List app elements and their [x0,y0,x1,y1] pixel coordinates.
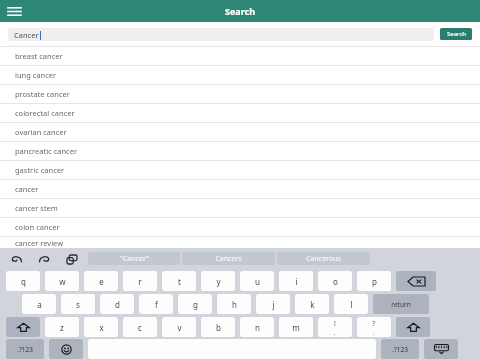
button[interactable]: g [178,294,212,314]
button[interactable]: t [162,271,196,291]
staticText: l [350,299,353,310]
staticText: ovarian cancer [15,127,67,137]
button[interactable]: ! [318,317,352,337]
button[interactable]: return [373,294,429,314]
staticText: .?123 [17,345,33,354]
staticText: ! [334,319,336,329]
staticText: k [310,299,315,310]
button[interactable]: prostate cancer [0,85,480,103]
button[interactable]: Cancer [8,28,434,41]
staticText: e [99,276,104,287]
staticText: ? [372,319,376,329]
staticText: pancreatic cancer [15,146,78,156]
button[interactable]: r [123,271,157,291]
staticText: lung cancer [15,70,57,80]
button[interactable]: Redo [36,251,52,267]
staticText: Cancers [215,254,242,264]
staticText: i [295,276,298,287]
button[interactable]: pancreatic cancer [0,142,480,160]
button[interactable]: f [139,294,173,314]
button[interactable]: gastric cancer [0,161,480,179]
button[interactable]: colorectal cancer [0,104,480,122]
button[interactable]: x [84,317,118,337]
button[interactable]: Shift [396,317,430,337]
staticText: u [255,276,260,287]
staticText: x [99,322,104,333]
button[interactable]: u [240,271,274,291]
button[interactable]: Cancerous [277,252,370,265]
button[interactable]: Paste [64,251,80,267]
button[interactable]: j [256,294,290,314]
button[interactable]: i [279,271,313,291]
staticText: colon cancer [15,222,60,232]
button[interactable]: Shift [6,317,40,337]
button[interactable]: ? [357,317,391,337]
button[interactable]: l [334,294,368,314]
button[interactable]: Hide keyboard [424,339,458,359]
button[interactable]: Backspace [396,271,436,291]
button[interactable]: b [201,317,235,337]
staticText: p [372,276,377,287]
button[interactable]: Search [440,28,472,40]
button[interactable]: Undo [8,251,24,267]
staticText: return [391,300,411,309]
staticText: Search [447,30,466,38]
button[interactable]: o [318,271,352,291]
button[interactable]: ovarian cancer [0,123,480,141]
staticText: b [216,322,221,333]
button[interactable]: y [201,271,235,291]
staticText: z [60,322,64,333]
button[interactable]: a [22,294,56,314]
staticText: o [333,276,338,287]
staticText: h [232,299,237,310]
staticText: r [138,276,142,287]
button[interactable]: q [6,271,40,291]
staticText: a [37,299,42,310]
staticText: d [115,299,120,310]
staticText: breast cancer [15,51,63,61]
button[interactable]: c [123,317,157,337]
button[interactable]: breast cancer [0,47,480,65]
button[interactable]: cancer [0,180,480,198]
button[interactable]: colon cancer [0,218,480,236]
button[interactable]: h [217,294,251,314]
staticText: Cancer [14,30,39,40]
button[interactable]: lung cancer [0,66,480,84]
button[interactable]: cancer review [0,237,480,248]
staticText: m [292,322,300,333]
button[interactable]: Emoji [49,339,83,359]
staticText: t [178,276,181,287]
button[interactable]: Open navigation menu [5,2,23,20]
button[interactable]: m [279,317,313,337]
staticText: Cancerous [306,254,341,264]
button[interactable]: .?123 [6,339,44,359]
staticText: y [216,276,221,287]
button[interactable]: e [84,271,118,291]
button[interactable]: p [357,271,391,291]
button[interactable]: d [100,294,134,314]
button[interactable]: Cancers [182,252,275,265]
staticText: . [373,329,375,336]
button[interactable]: w [45,271,79,291]
staticText: cancer [15,184,39,194]
button[interactable]: "Cancer" [88,252,180,265]
button[interactable]: .?123 [381,339,419,359]
button[interactable]: k [295,294,329,314]
staticText: w [59,276,66,287]
staticText: n [255,322,260,333]
button[interactable]: s [61,294,95,314]
button[interactable]: cancer stem [0,199,480,217]
staticText: q [21,276,26,287]
staticText: .?123 [392,345,408,354]
staticText: j [272,299,275,310]
staticText: prostate cancer [15,89,70,99]
staticText: c [138,322,142,333]
staticText: f [155,299,158,310]
button[interactable]: v [162,317,196,337]
staticText: , [334,329,336,336]
button[interactable]: n [240,317,274,337]
button[interactable]: z [45,317,79,337]
staticText: cancer review [15,238,64,248]
